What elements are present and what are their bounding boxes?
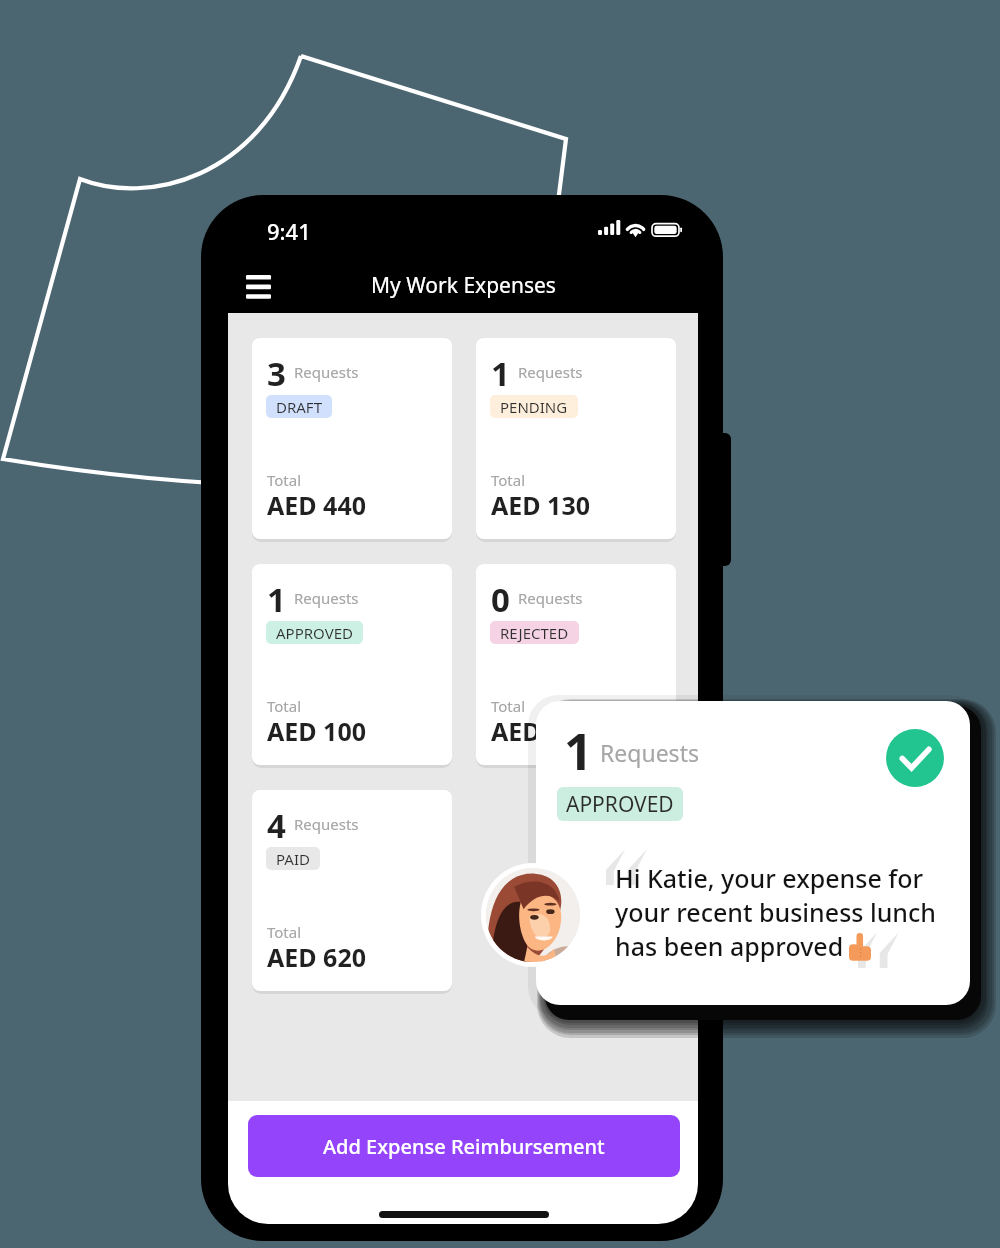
staticText: Requests: [294, 814, 359, 834]
staticText: your recent business lunch: [615, 895, 936, 929]
other: Approved: [886, 729, 944, 787]
staticText: AED 440: [267, 488, 367, 522]
button[interactable]: 1: [252, 564, 452, 765]
staticText: 4: [267, 803, 286, 848]
staticText: My Work Expenses: [371, 271, 556, 300]
staticText: AED 620: [491, 714, 591, 748]
other: Power button: [716, 433, 731, 566]
staticText: PAID: [276, 849, 310, 869]
button[interactable]: Open navigation menu: [236, 263, 280, 307]
staticText: PENDING: [500, 397, 568, 417]
staticText: AED 620: [267, 940, 367, 974]
button[interactable]: 4: [252, 790, 452, 991]
staticText: Total: [267, 470, 302, 490]
staticText: APPROVED: [276, 623, 353, 643]
button[interactable]: 3: [252, 338, 452, 539]
button[interactable]: 1: [476, 338, 676, 539]
staticText: Requests: [518, 588, 583, 608]
button[interactable]: Add Expense Reimbursement: [248, 1115, 680, 1177]
staticText: AED 100: [267, 714, 367, 748]
staticText: 9:41: [267, 216, 311, 246]
staticText: Requests: [600, 737, 699, 768]
staticText: Requests: [518, 362, 583, 382]
staticText: Total: [267, 922, 302, 942]
staticText: has been approved: [615, 929, 844, 963]
staticText: REJECTED: [500, 623, 569, 643]
staticText: Total: [267, 696, 302, 716]
staticText: APPROVED: [566, 790, 674, 819]
button[interactable]: 0: [476, 564, 676, 765]
staticText: Requests: [294, 362, 359, 382]
staticText: 1: [491, 351, 510, 396]
staticText: Requests: [294, 588, 359, 608]
staticText: 3: [267, 351, 286, 396]
staticText: AED 130: [491, 488, 591, 522]
staticText: Total: [491, 470, 526, 490]
staticText: Hi Katie, your expense for: [615, 861, 924, 895]
staticText: DRAFT: [276, 397, 322, 417]
staticText: Total: [491, 696, 526, 716]
staticText: Add Expense Reimbursement: [323, 1133, 605, 1160]
staticText: 1: [564, 717, 593, 785]
staticText: 1: [267, 577, 286, 622]
staticText: 0: [491, 577, 510, 622]
